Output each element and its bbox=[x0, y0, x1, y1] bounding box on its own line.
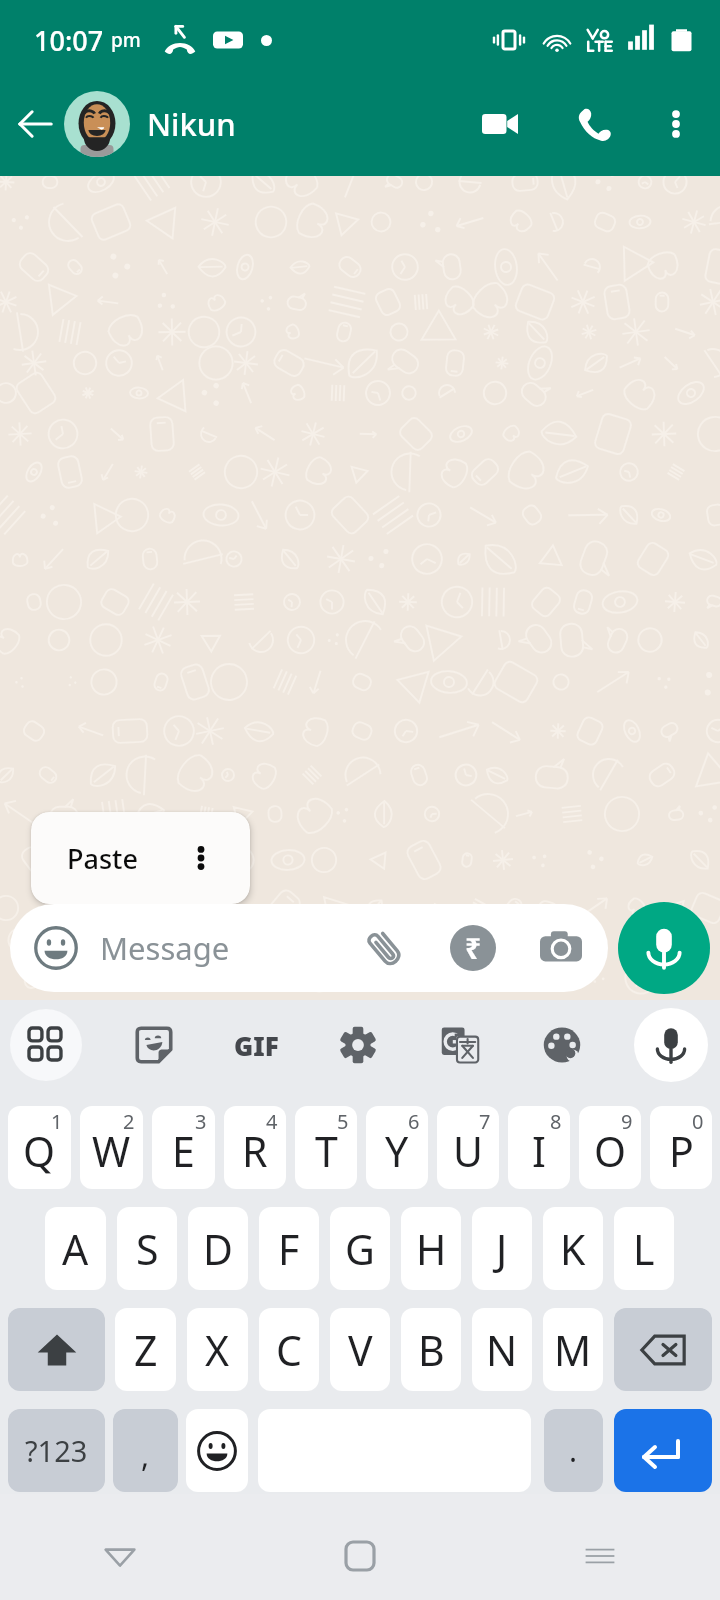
button[interactable]: O bbox=[579, 1106, 641, 1189]
button[interactable]: X bbox=[187, 1308, 248, 1391]
staticText: M bbox=[554, 1322, 592, 1378]
button[interactable]: Q bbox=[8, 1106, 71, 1189]
staticText: A bbox=[62, 1221, 89, 1277]
staticText: O bbox=[594, 1123, 627, 1179]
button[interactable]: Voice message bbox=[618, 902, 710, 994]
button[interactable]: R bbox=[224, 1106, 286, 1189]
button[interactable]: , bbox=[113, 1409, 178, 1492]
button[interactable]: A bbox=[45, 1207, 106, 1290]
button[interactable]: I bbox=[508, 1106, 570, 1189]
button[interactable]: Recents bbox=[480, 1512, 720, 1600]
staticText: 10:07 bbox=[34, 22, 104, 59]
staticText: Q bbox=[23, 1123, 56, 1179]
button[interactable]: E bbox=[152, 1106, 215, 1189]
button[interactable] bbox=[64, 91, 130, 157]
staticText: X bbox=[205, 1322, 230, 1378]
staticText: Message bbox=[100, 927, 230, 969]
staticText: 1 bbox=[51, 1108, 63, 1135]
staticText: Nikun bbox=[147, 103, 236, 145]
button[interactable]: Shift bbox=[8, 1308, 105, 1391]
button[interactable]: C bbox=[259, 1308, 319, 1391]
button[interactable]: K bbox=[543, 1207, 603, 1290]
button[interactable]: T bbox=[295, 1106, 357, 1189]
staticText: R bbox=[242, 1123, 268, 1179]
button[interactable]: Paste bbox=[31, 812, 250, 904]
staticText: B bbox=[418, 1322, 445, 1378]
button[interactable]: J bbox=[472, 1207, 532, 1290]
button[interactable]: Voice input bbox=[634, 1008, 708, 1082]
staticText: 0 bbox=[692, 1108, 704, 1135]
button[interactable]: More options bbox=[644, 92, 708, 156]
staticText: 8 bbox=[550, 1108, 562, 1135]
button[interactable]: U bbox=[437, 1106, 499, 1189]
button[interactable]: D bbox=[188, 1207, 248, 1290]
button[interactable]: L bbox=[614, 1207, 674, 1290]
staticText: 4 bbox=[266, 1108, 278, 1135]
button[interactable]: P bbox=[650, 1106, 712, 1189]
staticText: , bbox=[141, 1435, 150, 1476]
staticText: U bbox=[453, 1123, 483, 1179]
staticText: 7 bbox=[479, 1108, 491, 1135]
button[interactable]: V bbox=[330, 1308, 390, 1391]
staticText: J bbox=[496, 1221, 508, 1277]
button[interactable]: Message bbox=[10, 904, 608, 992]
staticText: H bbox=[416, 1221, 447, 1277]
staticText: F bbox=[278, 1221, 300, 1277]
staticText: G bbox=[345, 1221, 375, 1277]
button[interactable]: S bbox=[117, 1207, 177, 1290]
button[interactable]: Back bbox=[0, 1512, 240, 1600]
staticText: GIF bbox=[234, 1028, 279, 1063]
staticText: Paste bbox=[67, 840, 138, 877]
button[interactable]: Back bbox=[8, 97, 62, 151]
staticText: 3 bbox=[195, 1108, 207, 1135]
button[interactable]: Backspace bbox=[614, 1308, 712, 1391]
button[interactable]: Settings bbox=[328, 1015, 388, 1075]
button[interactable]: Translate bbox=[430, 1015, 490, 1075]
button[interactable]: W bbox=[80, 1106, 143, 1189]
staticText: L bbox=[633, 1221, 655, 1277]
button[interactable]: Stickers bbox=[124, 1015, 184, 1075]
staticText: 6 bbox=[408, 1108, 420, 1135]
staticText: 2 bbox=[123, 1108, 135, 1135]
staticText: I bbox=[532, 1123, 546, 1179]
button[interactable]: Theme bbox=[532, 1015, 592, 1075]
staticText: T bbox=[315, 1123, 338, 1179]
staticText: W bbox=[92, 1123, 131, 1179]
staticText: N bbox=[486, 1322, 518, 1378]
button[interactable]: G bbox=[330, 1207, 390, 1290]
button[interactable]: Apps bbox=[10, 1009, 82, 1081]
staticText: P bbox=[669, 1123, 694, 1179]
button[interactable]: Y bbox=[366, 1106, 428, 1189]
staticText: V bbox=[348, 1322, 373, 1378]
staticText: . bbox=[569, 1430, 578, 1471]
staticText: K bbox=[560, 1221, 586, 1277]
button[interactable]: ?123 bbox=[8, 1409, 105, 1492]
button[interactable]: B bbox=[401, 1308, 461, 1391]
staticText: C bbox=[276, 1322, 302, 1378]
button[interactable]: Emoji bbox=[186, 1409, 248, 1492]
staticText: ?123 bbox=[25, 1431, 88, 1470]
staticText: ₹ bbox=[465, 929, 482, 967]
button[interactable]: Home bbox=[240, 1512, 480, 1600]
staticText: Y bbox=[385, 1123, 409, 1179]
staticText: Z bbox=[134, 1322, 158, 1378]
staticText: D bbox=[203, 1221, 233, 1277]
button[interactable]: F bbox=[259, 1207, 319, 1290]
button[interactable]: M bbox=[543, 1308, 603, 1391]
staticText: S bbox=[136, 1221, 159, 1277]
button[interactable]: Enter bbox=[614, 1409, 712, 1492]
button[interactable]: Z bbox=[115, 1308, 176, 1391]
button[interactable]: Voice call bbox=[562, 92, 626, 156]
button[interactable]: GIF bbox=[226, 1015, 286, 1075]
staticText: E bbox=[172, 1123, 195, 1179]
staticText: 9 bbox=[621, 1108, 633, 1135]
button[interactable]: N bbox=[472, 1308, 532, 1391]
staticText: pm bbox=[111, 27, 141, 53]
button[interactable]: Video call bbox=[468, 92, 532, 156]
button[interactable]: H bbox=[401, 1207, 461, 1290]
button[interactable]: . bbox=[544, 1409, 603, 1492]
staticText: 5 bbox=[337, 1108, 349, 1135]
